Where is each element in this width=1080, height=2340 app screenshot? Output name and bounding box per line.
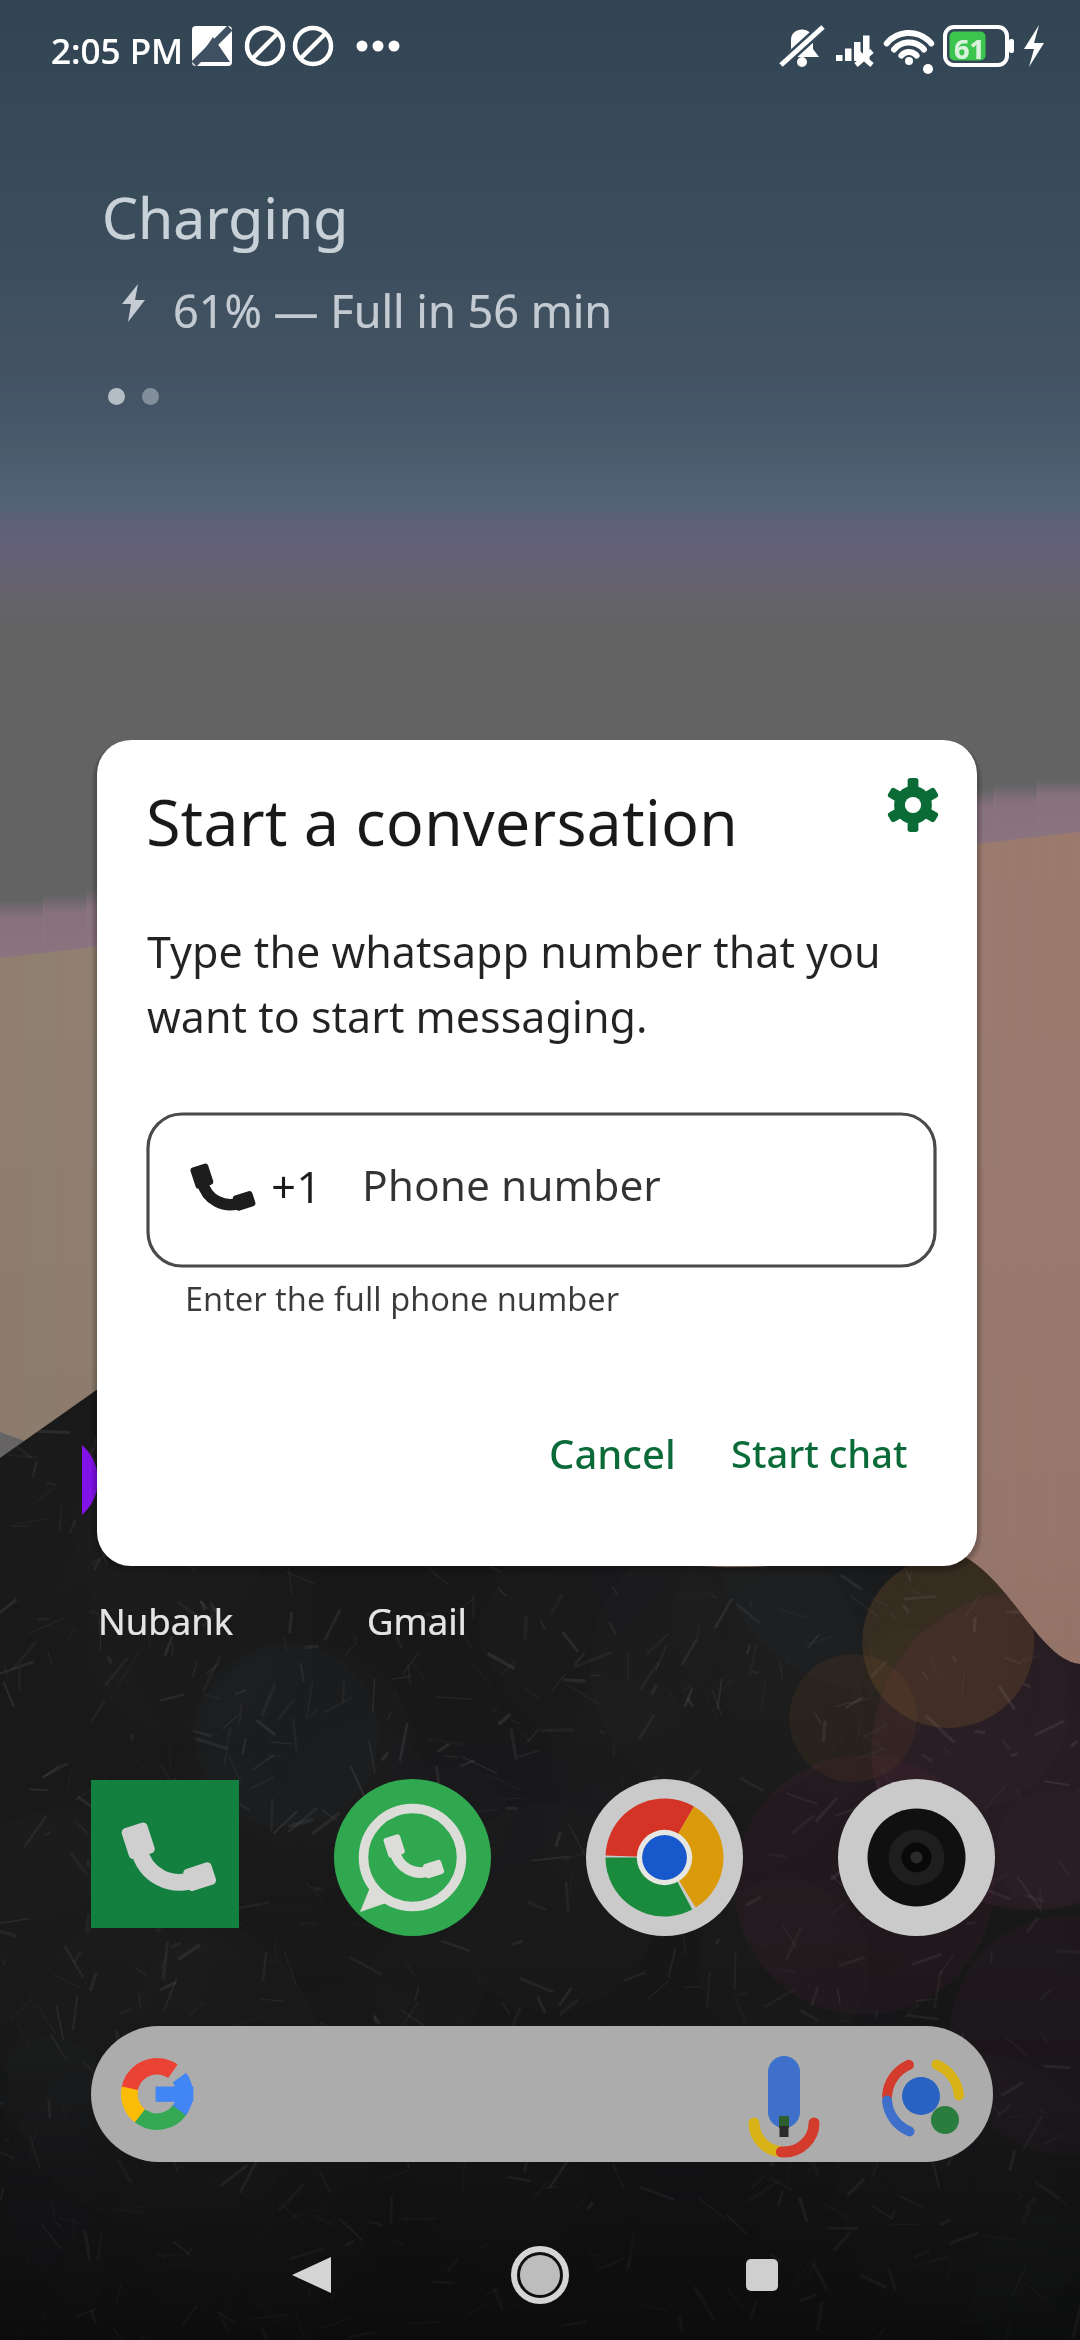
staticText: Type the whatsapp number that you want t…	[147, 922, 881, 1046]
staticText: Charging	[102, 178, 349, 256]
button[interactable]: Back	[272, 2237, 352, 2317]
button[interactable]: Home	[500, 2235, 580, 2315]
staticText: Start chat	[731, 1427, 908, 1479]
staticText: Nubank	[98, 1596, 234, 1646]
button[interactable]: Chrome	[586, 1779, 743, 1936]
staticText: Cancel	[549, 1426, 676, 1480]
button[interactable]: Cancel	[521, 1413, 704, 1493]
button[interactable]: Camera	[838, 1779, 995, 1936]
staticText: Enter the full phone number	[185, 1276, 620, 1320]
button[interactable]: +1	[148, 1114, 935, 1266]
button[interactable]: WhatsApp	[334, 1779, 491, 1936]
button[interactable]: Phone	[91, 1780, 239, 1928]
button[interactable]: Start chat	[703, 1413, 936, 1493]
button[interactable]: Search	[91, 2026, 993, 2162]
staticText: 61	[954, 30, 985, 67]
button[interactable]: Settings	[865, 757, 961, 853]
staticText: Phone number	[362, 1156, 661, 1214]
staticText: 2:05 PM	[51, 27, 184, 75]
button[interactable]: Recent apps	[722, 2235, 802, 2315]
staticText: Start a conversation	[146, 779, 738, 865]
staticText: 61% — Full in 56 min	[173, 280, 613, 341]
staticText: +1	[271, 1156, 322, 1216]
staticText: Gmail	[367, 1596, 468, 1646]
